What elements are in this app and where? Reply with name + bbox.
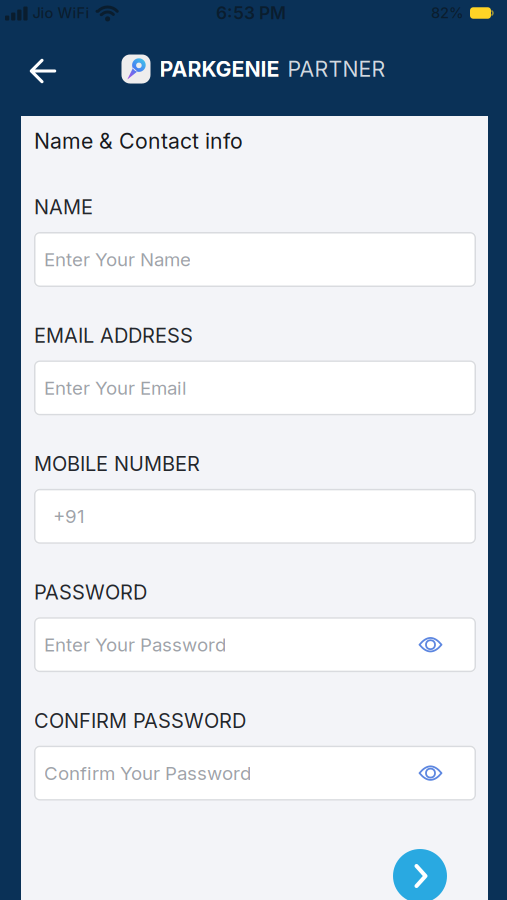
staticText: Enter Your Password	[44, 633, 226, 656]
button[interactable]	[419, 765, 442, 781]
staticText: Confirm Your Password	[44, 762, 251, 784]
staticText: 6:53 PM	[216, 2, 286, 23]
button[interactable]: +91	[34, 489, 476, 544]
button[interactable]: Enter Your Name	[34, 232, 476, 287]
button[interactable]	[21, 49, 65, 93]
staticText: PARKGENIE	[159, 56, 279, 82]
staticText: Enter Your Name	[44, 248, 191, 271]
staticText: Jio WiFi	[33, 4, 90, 22]
staticText: Enter Your Email	[44, 377, 187, 399]
staticText: +91	[53, 505, 85, 528]
button[interactable]	[393, 849, 447, 900]
button[interactable]	[419, 637, 442, 653]
staticText: EMAIL ADDRESS	[34, 323, 193, 347]
staticText: NAME	[34, 195, 93, 219]
staticText: 82%	[431, 4, 464, 22]
staticText: MOBILE NUMBER	[34, 452, 200, 476]
button[interactable]: Enter Your Password	[34, 617, 476, 672]
button[interactable]: Enter Your Email	[34, 360, 476, 415]
button[interactable]: Confirm Your Password	[34, 746, 476, 801]
staticText: CONFIRM PASSWORD	[34, 708, 246, 733]
staticText: PARTNER	[287, 56, 385, 82]
staticText: Name & Contact info	[34, 128, 243, 154]
staticText: PASSWORD	[34, 580, 147, 604]
